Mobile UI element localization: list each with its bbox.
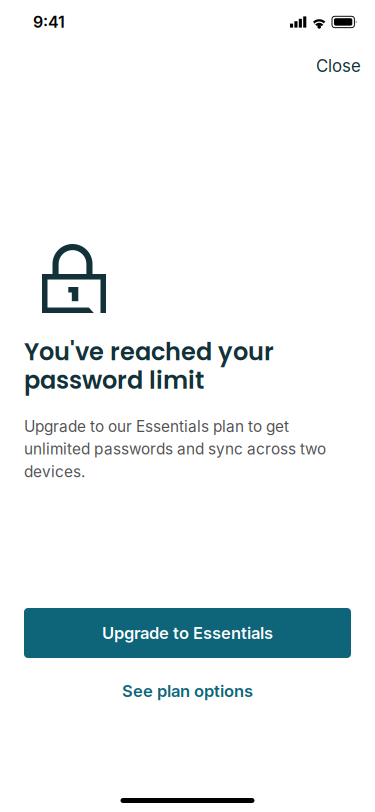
staticText: Upgrade to Essentials: [102, 623, 273, 643]
button[interactable]: Upgrade to Essentials: [24, 608, 351, 658]
staticText: Upgrade to our Essentials plan to get un…: [24, 417, 326, 481]
staticText: Close: [316, 56, 361, 76]
staticText: password limit: [24, 364, 204, 397]
staticText: See plan options: [122, 681, 253, 701]
button[interactable]: See plan options: [24, 658, 351, 715]
button[interactable]: Close: [308, 47, 369, 85]
staticText: 9:41: [33, 12, 65, 32]
staticText: You've reached your: [24, 335, 274, 369]
